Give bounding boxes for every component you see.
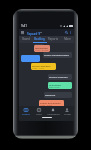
staticText: Interesting bbox=[35, 46, 48, 49]
staticText: Squad 9 bbox=[27, 31, 41, 36]
staticText: 11:41 · 21 min bbox=[35, 49, 49, 51]
staticText: Keep notes bbox=[49, 86, 60, 88]
button[interactable]: More bbox=[60, 36, 74, 42]
staticText: Record analytics bbox=[49, 75, 68, 78]
staticText: Profile bbox=[64, 113, 71, 116]
staticText: Projects bbox=[22, 113, 30, 116]
button[interactable]: Record analytics bbox=[48, 74, 72, 80]
staticText: Onboard entertainment bbox=[45, 93, 71, 96]
button[interactable]: Projects bbox=[19, 106, 32, 116]
button[interactable]: Tasks bbox=[32, 106, 46, 116]
button[interactable]: Profile bbox=[60, 106, 74, 116]
staticText: Safety procedures bbox=[40, 101, 61, 104]
button[interactable]: Onboard entertainment bbox=[44, 92, 72, 98]
button[interactable]: Board bbox=[19, 36, 32, 42]
staticText: 12:05 · 3 min bbox=[40, 104, 52, 106]
button[interactable]: Menu bbox=[20, 30, 25, 35]
staticText: Board bbox=[22, 37, 30, 41]
button[interactable] bbox=[21, 55, 40, 62]
staticText: 9:41 bbox=[21, 24, 27, 28]
button[interactable]: Reports bbox=[46, 36, 60, 42]
staticText: Jul 16 bbox=[36, 44, 42, 47]
button[interactable]: Marketing campaign bbox=[48, 82, 72, 89]
button[interactable]: Rocket available bbox=[31, 63, 56, 70]
staticText: Backlog bbox=[34, 37, 45, 41]
staticText: More bbox=[64, 37, 71, 41]
staticText: Rocket available bbox=[32, 64, 51, 67]
staticText: Tasks bbox=[36, 113, 42, 116]
staticText: Marketing campaign bbox=[49, 83, 71, 86]
button[interactable]: Backlog bbox=[32, 36, 46, 42]
button[interactable]: More options bbox=[68, 30, 73, 35]
staticText: Reports bbox=[48, 37, 58, 41]
staticText: Public announcement bbox=[44, 53, 69, 56]
button[interactable]: Public announcement bbox=[43, 52, 72, 58]
button[interactable]: Search bbox=[64, 30, 69, 35]
button[interactable]: Interesting bbox=[34, 45, 50, 52]
button[interactable]: Notifications bbox=[46, 106, 60, 116]
staticText: Notifications bbox=[47, 113, 60, 116]
staticText: 10:32 · 11:52 bbox=[32, 67, 44, 69]
button[interactable]: Safety procedures bbox=[39, 100, 64, 107]
